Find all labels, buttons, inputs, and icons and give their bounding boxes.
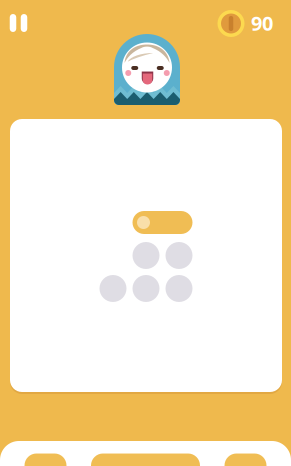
- button[interactable]: Pause: [0, 8, 36, 38]
- button[interactable]: 90: [218, 7, 276, 39]
- button[interactable]: Undo: [24, 453, 66, 466]
- staticText: 90: [251, 10, 273, 36]
- button[interactable]: Shuffle: [224, 453, 266, 466]
- button[interactable]: Hint: [91, 453, 200, 466]
